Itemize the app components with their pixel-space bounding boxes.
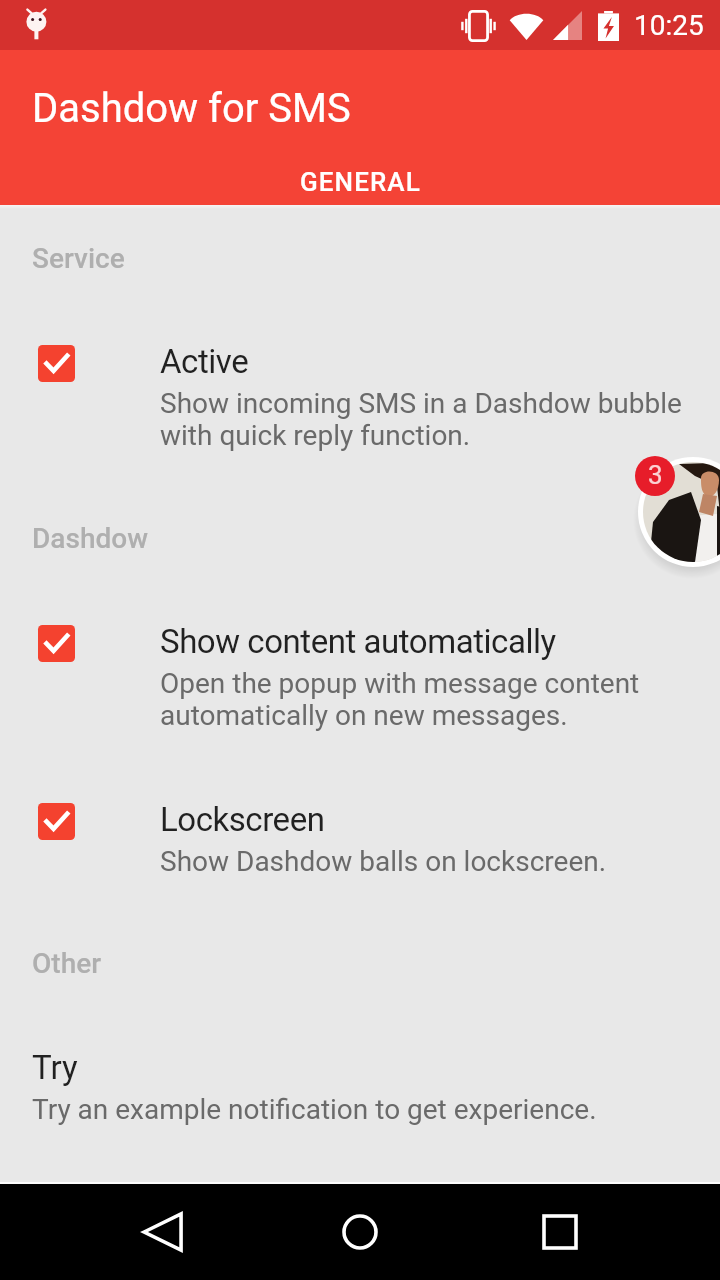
- button[interactable]: Dashdow bubble: [638, 457, 720, 567]
- staticText: GENERAL: [300, 167, 421, 197]
- button[interactable]: Try: [0, 1034, 720, 1138]
- staticText: Other: [32, 947, 102, 980]
- staticText: Try: [32, 1048, 78, 1087]
- button[interactable]: Show content automatically: [0, 611, 720, 743]
- button[interactable]: Recents: [520, 1192, 600, 1272]
- staticText: Dashdow: [32, 522, 149, 555]
- staticText: Open the popup with message content auto…: [160, 667, 640, 732]
- staticText: Lockscreen: [160, 800, 325, 839]
- staticText: Try an example notification to get exper…: [32, 1093, 597, 1126]
- staticText: 10:25: [634, 9, 704, 42]
- button[interactable]: Back: [120, 1192, 200, 1272]
- button[interactable]: Lockscreen: [0, 789, 720, 889]
- staticText: Show incoming SMS in a Dashdow bubble wi…: [160, 387, 682, 452]
- staticText: 3: [648, 460, 663, 490]
- button[interactable]: GENERAL: [0, 147, 720, 205]
- staticText: Show content automatically: [160, 622, 556, 661]
- staticText: Service: [32, 242, 125, 275]
- staticText: Active: [160, 342, 249, 381]
- staticText: Dashdow for SMS: [32, 85, 351, 132]
- button[interactable]: Home: [320, 1192, 400, 1272]
- button[interactable]: Active: [0, 331, 720, 463]
- staticText: Show Dashdow balls on lockscreen.: [160, 845, 607, 878]
